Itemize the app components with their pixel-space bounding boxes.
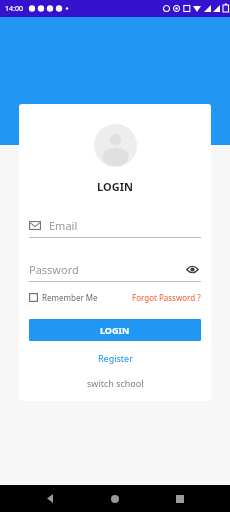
button[interactable]: Recent apps bbox=[165, 485, 195, 512]
button[interactable]: switch school bbox=[29, 377, 201, 389]
staticText: LOGIN bbox=[29, 179, 201, 194]
staticText: switch school bbox=[87, 377, 144, 389]
button[interactable]: LOGIN bbox=[29, 319, 201, 341]
button[interactable]: Show password bbox=[183, 260, 201, 278]
staticText: Password bbox=[29, 262, 183, 277]
button[interactable]: Back bbox=[35, 485, 65, 512]
staticText: LOGIN bbox=[100, 324, 130, 336]
staticText: Forgot Password ? bbox=[132, 292, 201, 303]
staticText: Remember Me bbox=[42, 292, 98, 303]
staticText: Email bbox=[49, 218, 78, 233]
staticText: Register bbox=[98, 352, 133, 364]
button[interactable]: Home bbox=[100, 485, 130, 512]
button[interactable]: Remember Me bbox=[29, 292, 102, 303]
button[interactable]: Register bbox=[29, 352, 201, 364]
button[interactable]: Forgot Password ? bbox=[132, 292, 201, 303]
staticText: 14:00 bbox=[5, 4, 23, 14]
